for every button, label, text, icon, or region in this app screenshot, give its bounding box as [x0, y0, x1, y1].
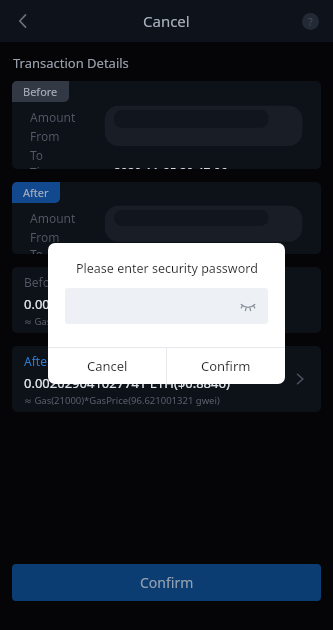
- button[interactable]: Help: [296, 7, 324, 35]
- staticText: After: [23, 185, 49, 200]
- staticText: 0.000021 ETH($0.0091): [24, 295, 163, 313]
- staticText: Cancel: [87, 357, 128, 375]
- button[interactable]: After: [12, 346, 321, 412]
- button[interactable]: Confirm: [167, 348, 285, 384]
- button[interactable]: After: [12, 182, 321, 254]
- staticText: To: [30, 246, 44, 254]
- staticText: 0.002029041027741 ETH($0.8846): [24, 374, 230, 392]
- button[interactable]: Before: [12, 267, 321, 333]
- staticText: To: [30, 147, 44, 163]
- staticText: Please enter security password: [76, 260, 258, 277]
- button[interactable]: Before: [12, 81, 321, 169]
- button[interactable]: Back: [8, 6, 38, 36]
- staticText: Amount: [30, 210, 76, 226]
- button[interactable]: Show password: [65, 288, 268, 324]
- staticText: Before: [23, 84, 58, 99]
- staticText: ≈ Gas(21000)*GasPrice(96.621001321 gwei): [24, 394, 220, 407]
- staticText: From: [30, 229, 60, 245]
- button[interactable]: Cancel: [48, 348, 166, 384]
- button[interactable]: Confirm: [12, 564, 321, 601]
- staticText: After: [24, 353, 52, 369]
- staticText: Confirm: [140, 573, 194, 592]
- staticText: From: [30, 128, 60, 144]
- staticText: Cancel: [143, 11, 190, 31]
- staticText: Time: [30, 164, 58, 169]
- button[interactable]: Show password: [238, 296, 258, 316]
- staticText: Amount: [30, 109, 76, 125]
- staticText: ?: [308, 14, 313, 29]
- staticText: Confirm: [201, 357, 251, 375]
- staticText: 2020-11-05 20:47:06: [114, 164, 228, 169]
- staticText: Transaction Details: [13, 54, 129, 72]
- staticText: ≈ Gas(21000)*GasPrice(1 gwei): [24, 315, 163, 328]
- staticText: Before: [24, 274, 62, 290]
